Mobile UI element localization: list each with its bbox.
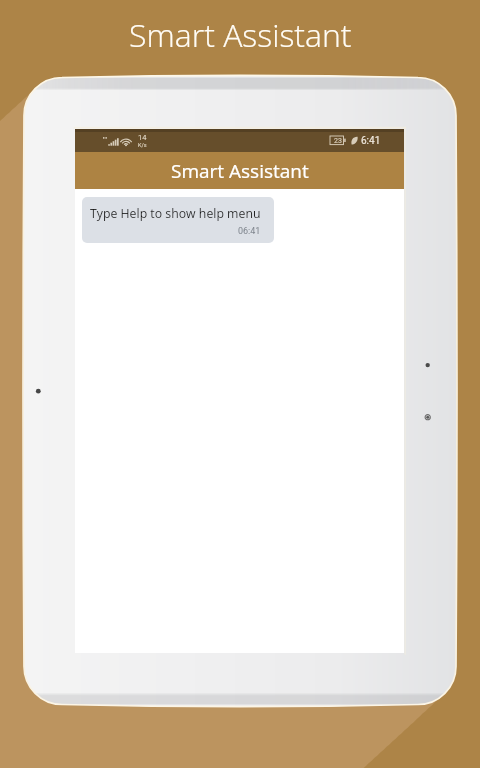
- staticText: 23: [334, 137, 342, 145]
- button[interactable]: Smart Assistant: [75, 152, 404, 189]
- button[interactable]: Type Help to show help menu: [82, 197, 274, 243]
- staticText: K/s: [138, 142, 147, 148]
- staticText: Smart Assistant: [171, 158, 309, 184]
- staticText: 6:41: [361, 135, 381, 147]
- staticText: 14: [138, 133, 147, 142]
- staticText: Type Help to show help menu: [90, 205, 261, 222]
- staticText: 06:41: [238, 226, 261, 237]
- staticText: Smart Assistant: [129, 13, 352, 57]
